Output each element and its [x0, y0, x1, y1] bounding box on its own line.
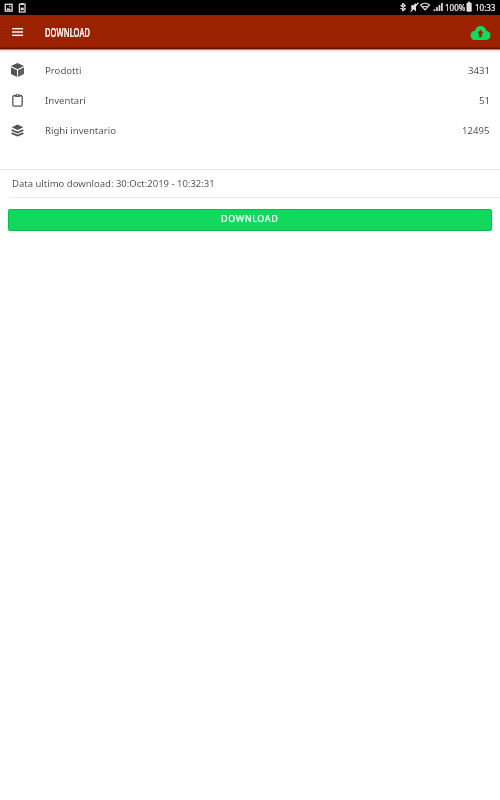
button[interactable]: Upload: [468, 19, 494, 45]
staticText: 10:33: [475, 2, 496, 13]
button[interactable]: Menu: [0, 15, 34, 49]
button[interactable]: Righi inventario: [0, 115, 500, 145]
staticText: Inventari: [45, 94, 86, 107]
staticText: Righi inventario: [45, 124, 116, 137]
staticText: 100%: [445, 2, 466, 13]
staticText: 12495: [462, 124, 490, 137]
button[interactable]: DOWNLOAD: [8, 209, 492, 231]
staticText: 51: [479, 94, 490, 107]
button[interactable]: Prodotti: [0, 55, 500, 85]
staticText: Prodotti: [45, 64, 82, 77]
staticText: DOWNLOAD: [221, 212, 279, 224]
staticText: DOWNLOAD: [45, 24, 91, 41]
staticText: Data ultimo download: 30:Oct:2019 - 10:3…: [12, 177, 215, 190]
staticText: 3431: [468, 64, 490, 77]
button[interactable]: Inventari: [0, 85, 500, 115]
